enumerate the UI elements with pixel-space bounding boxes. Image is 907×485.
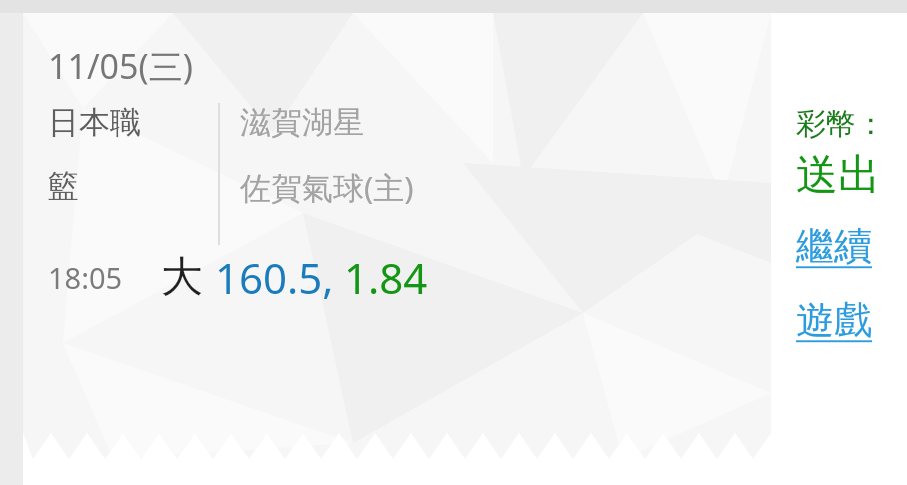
button[interactable]: 11/05(三) [23, 13, 771, 485]
staticText: 送出 [796, 149, 880, 202]
staticText: 1.84 [344, 249, 428, 306]
staticText: 160.5, [215, 249, 334, 306]
staticText: 大 [161, 251, 203, 304]
staticText: 籃 [48, 166, 79, 205]
button[interactable]: 遊戲 [796, 296, 872, 344]
staticText: 滋賀湖星 [240, 103, 364, 142]
button[interactable]: 繼續 [796, 222, 872, 270]
staticText: 遊戲 [796, 296, 872, 344]
staticText: 11/05(三) [48, 43, 193, 89]
staticText: 日本職 [48, 103, 141, 142]
staticText: 彩幣： [796, 105, 886, 143]
staticText: 18:05 [48, 258, 123, 297]
staticText: 繼續 [796, 222, 872, 270]
staticText: 佐賀氣球(主) [240, 166, 414, 208]
